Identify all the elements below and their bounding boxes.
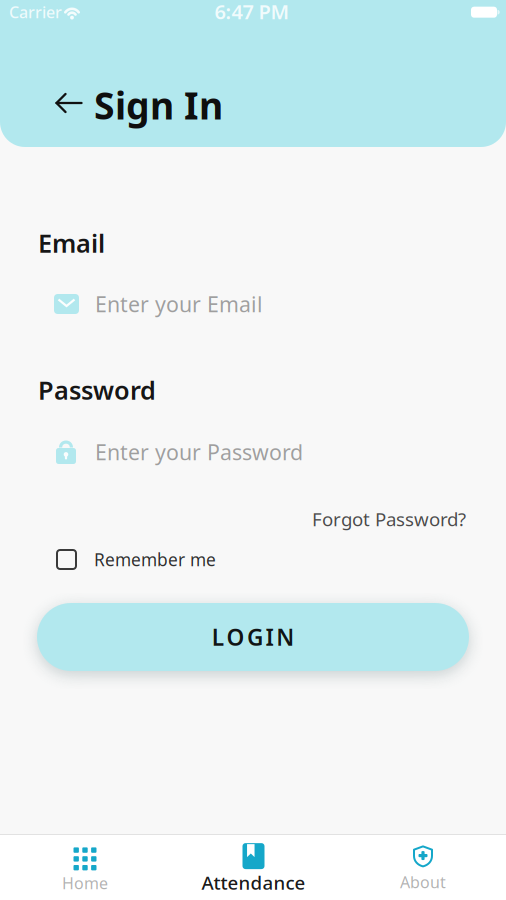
button[interactable]: Back [46,83,90,123]
staticText: Enter your Password [95,438,303,466]
staticText: 6:47 PM [214,0,289,25]
staticText: O [226,622,244,652]
button[interactable]: Home [25,841,145,899]
staticText: Email [38,226,105,260]
staticText: Forgot Password? [312,507,466,531]
button[interactable]: Forgot Password? [312,507,466,531]
staticText: Remember me [94,548,216,571]
staticText: Enter your Email [95,290,263,318]
button[interactable]: About [363,840,483,898]
staticText: L [212,622,224,652]
staticText: I [266,622,274,652]
staticText: N [276,622,294,652]
button[interactable]: L [37,603,469,671]
button[interactable]: Remember me [56,548,356,571]
staticText: Carrier [9,1,62,23]
staticText: Attendance [201,870,305,895]
staticText: About [400,871,446,893]
staticText: G [247,622,263,652]
staticText: Sign In [94,80,223,130]
button[interactable]: Attendance [183,839,323,899]
staticText: Home [62,872,108,894]
staticText: Password [38,373,156,407]
